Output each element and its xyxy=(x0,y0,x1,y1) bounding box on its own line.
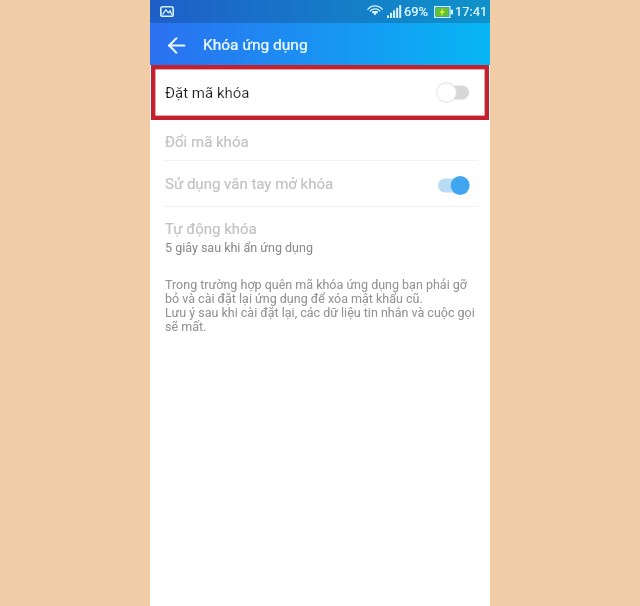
staticText: Tự động khóa xyxy=(165,220,257,238)
staticText: 5 giây sau khi ẩn ứng dụng xyxy=(165,240,313,255)
staticText: Đặt mã khóa xyxy=(165,84,250,102)
staticText: 17:41 xyxy=(455,4,488,19)
staticText: Khóa ứng dụng xyxy=(203,36,308,54)
button[interactable]: Back xyxy=(159,28,193,62)
button[interactable]: Tự động khóa xyxy=(150,207,490,264)
staticText: Đổi mã khóa xyxy=(165,133,249,151)
staticText: Sử dụng vân tay mở khóa xyxy=(165,175,334,193)
button[interactable]: Đặt mã khóa xyxy=(150,65,490,120)
button[interactable]: Đổi mã khóa xyxy=(150,120,490,160)
button[interactable]: Đặt mã khóa xyxy=(438,82,469,103)
button[interactable]: Sử dụng vân tay mở khóa xyxy=(150,161,490,206)
staticText: 69% xyxy=(404,4,429,19)
button[interactable]: Sử dụng vân tay mở khóa xyxy=(438,175,469,196)
staticText: Trong trường hợp quên mã khóa ứng dụng b… xyxy=(165,277,478,334)
